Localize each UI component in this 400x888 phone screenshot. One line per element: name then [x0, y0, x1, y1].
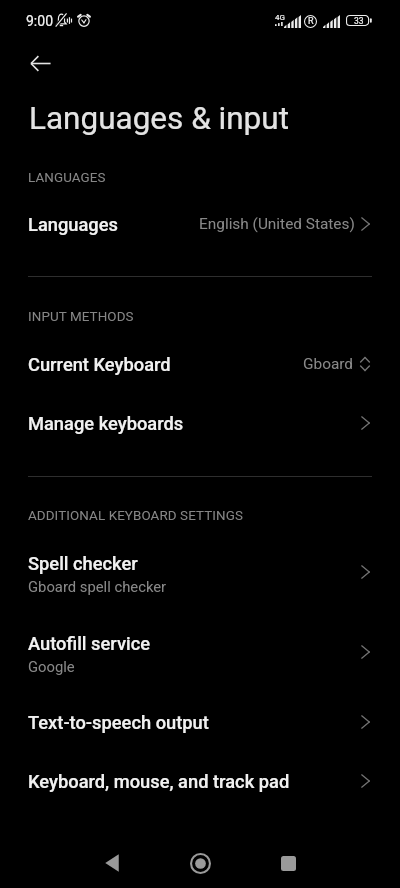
staticText: INPUT METHODS: [28, 309, 134, 325]
staticText: 9:00: [26, 13, 53, 29]
staticText: Gboard spell checker: [28, 578, 167, 595]
staticText: Google: [28, 658, 75, 675]
button[interactable]: Spell checker: [0, 544, 400, 600]
staticText: Manage keyboards: [28, 413, 184, 434]
staticText: Text-to-speech output: [28, 712, 209, 733]
button[interactable]: Languages: [0, 200, 400, 248]
button[interactable]: Back: [88, 839, 136, 887]
staticText: Autofill service: [28, 633, 150, 654]
button[interactable]: Home: [176, 839, 224, 887]
staticText: R: [308, 16, 314, 27]
button[interactable]: Manage keyboards: [0, 399, 400, 447]
button[interactable]: Text-to-speech output: [0, 698, 400, 746]
staticText: Languages & input: [29, 100, 289, 137]
staticText: Spell checker: [28, 553, 138, 574]
staticText: Languages: [28, 214, 118, 235]
button[interactable]: Current Keyboard: [0, 340, 400, 388]
staticText: Gboard: [303, 355, 354, 373]
button[interactable]: Autofill service: [0, 624, 400, 680]
staticText: English (United States): [199, 215, 355, 233]
staticText: Current Keyboard: [28, 354, 171, 375]
button[interactable]: Navigate up: [16, 39, 64, 87]
staticText: ADDITIONAL KEYBOARD SETTINGS: [28, 508, 243, 524]
staticText: 33: [354, 16, 364, 26]
staticText: 4G: [275, 13, 285, 22]
button[interactable]: Recent apps: [264, 839, 312, 887]
staticText: Keyboard, mouse, and track pad: [28, 771, 290, 792]
staticText: LANGUAGES: [28, 170, 106, 186]
button[interactable]: Keyboard, mouse, and track pad: [0, 757, 400, 805]
